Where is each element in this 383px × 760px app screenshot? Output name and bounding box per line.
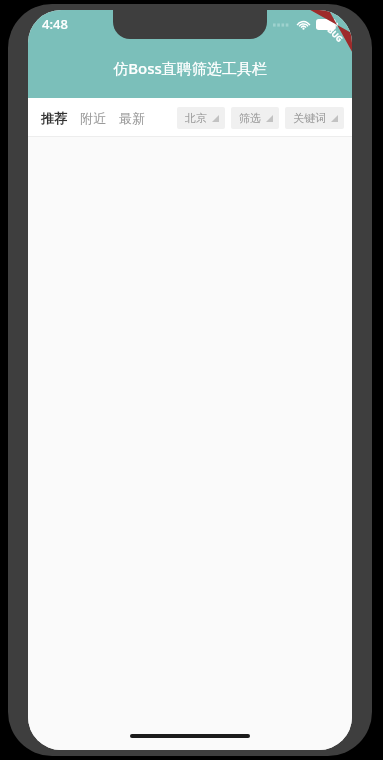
staticText: 筛选 [239,111,261,125]
staticText: 4:48 [42,15,68,33]
other: Battery [316,19,338,30]
button[interactable]: 最新 [116,104,148,132]
button[interactable]: 筛选 [231,107,279,129]
staticText: DEBUG [318,17,346,44]
button[interactable]: 关键词 [285,107,344,129]
staticText: 最新 [119,110,145,126]
staticText: 关键词 [293,111,326,125]
button[interactable]: 推荐 [38,104,70,132]
staticText: 仿Boss直聘筛选工具栏 [113,58,267,78]
other: Wi-Fi [296,19,311,30]
staticText: 附近 [80,110,106,126]
staticText: 推荐 [41,110,67,126]
staticText: 北京 [185,111,207,125]
button[interactable]: 附近 [77,104,109,132]
button[interactable]: 北京 [177,107,225,129]
